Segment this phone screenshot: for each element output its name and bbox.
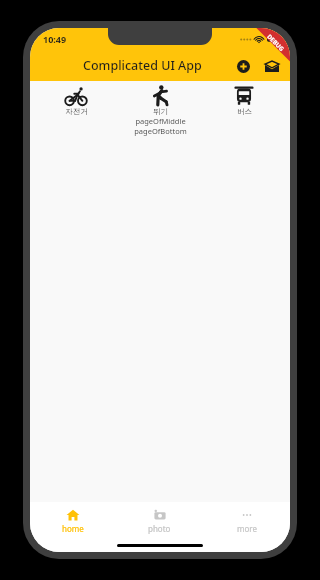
button[interactable]: Mail bbox=[261, 55, 283, 77]
staticText: pageOfMiddle bbox=[135, 116, 186, 126]
staticText: DEBUG bbox=[265, 33, 286, 53]
staticText: Complicated UI App bbox=[83, 57, 202, 74]
button[interactable]: photo bbox=[116, 502, 203, 539]
staticText: 버스 bbox=[237, 107, 252, 116]
button[interactable]: 버스 bbox=[206, 85, 282, 116]
staticText: pageOfBottom bbox=[134, 126, 187, 136]
staticText: home bbox=[62, 523, 84, 534]
staticText: 뛰기 bbox=[153, 107, 168, 116]
staticText: 10:49 bbox=[43, 33, 67, 45]
button[interactable]: 자전거 bbox=[38, 85, 114, 116]
staticText: photo bbox=[148, 523, 171, 534]
button[interactable]: more bbox=[203, 502, 290, 539]
button[interactable]: home bbox=[30, 502, 116, 539]
staticText: more bbox=[237, 523, 257, 534]
button[interactable]: 뛰기 bbox=[122, 85, 198, 136]
staticText: 자전거 bbox=[65, 107, 88, 116]
button[interactable]: Add bbox=[232, 55, 254, 77]
